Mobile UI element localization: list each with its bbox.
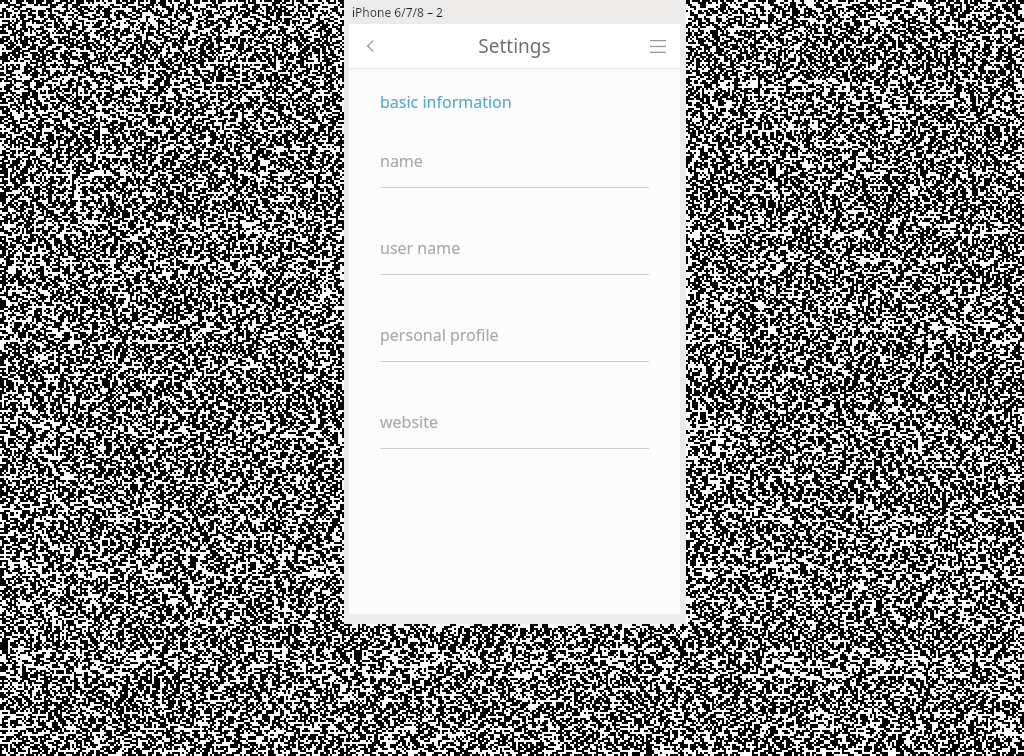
staticText: personal profile [380,324,499,346]
staticText: basic information [380,91,512,113]
staticText: iPhone 6/7/8 – 2 [352,4,443,20]
staticText: website [380,411,439,433]
staticText: user name [380,237,461,259]
button[interactable]: website [349,395,680,482]
button[interactable]: personal profile [349,308,680,395]
button[interactable]: Menu [640,28,676,64]
staticText: name [380,150,423,172]
staticText: Settings [478,33,551,59]
button[interactable]: Back [351,26,391,66]
button[interactable]: user name [349,221,680,308]
button[interactable]: name [349,134,680,221]
